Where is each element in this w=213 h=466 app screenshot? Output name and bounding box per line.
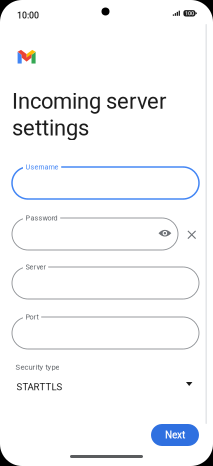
staticText: Username <box>26 163 59 171</box>
button[interactable]: Port <box>12 317 199 349</box>
staticText: 100 <box>185 10 194 17</box>
button[interactable]: Server <box>12 267 199 299</box>
button[interactable]: Next <box>151 424 199 446</box>
staticText: STARTTLS <box>17 381 63 393</box>
staticText: Server <box>26 263 46 271</box>
staticText: Password <box>26 214 58 222</box>
staticText: Incoming server settings <box>12 88 166 141</box>
staticText: Security type <box>15 363 59 372</box>
staticText: Port <box>26 313 39 321</box>
staticText: Next <box>165 429 185 441</box>
staticText: 10:00 <box>17 10 39 21</box>
button[interactable]: Show password <box>158 230 171 237</box>
button[interactable]: Password <box>12 218 178 250</box>
button[interactable]: Username <box>12 167 199 199</box>
button[interactable]: Clear password <box>187 230 196 239</box>
button[interactable]: Security type <box>14 362 199 396</box>
